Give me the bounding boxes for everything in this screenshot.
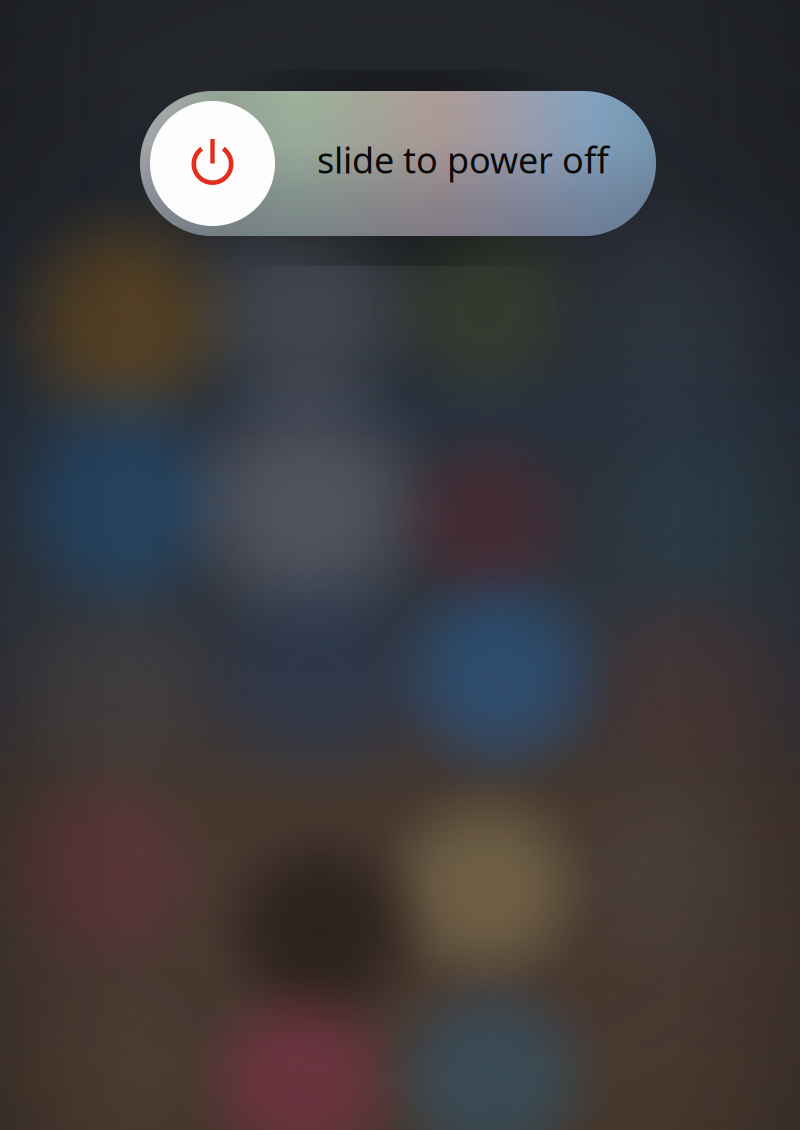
button[interactable]: Slide to power off [140,91,656,236]
staticText: slide to power off [317,136,609,183]
